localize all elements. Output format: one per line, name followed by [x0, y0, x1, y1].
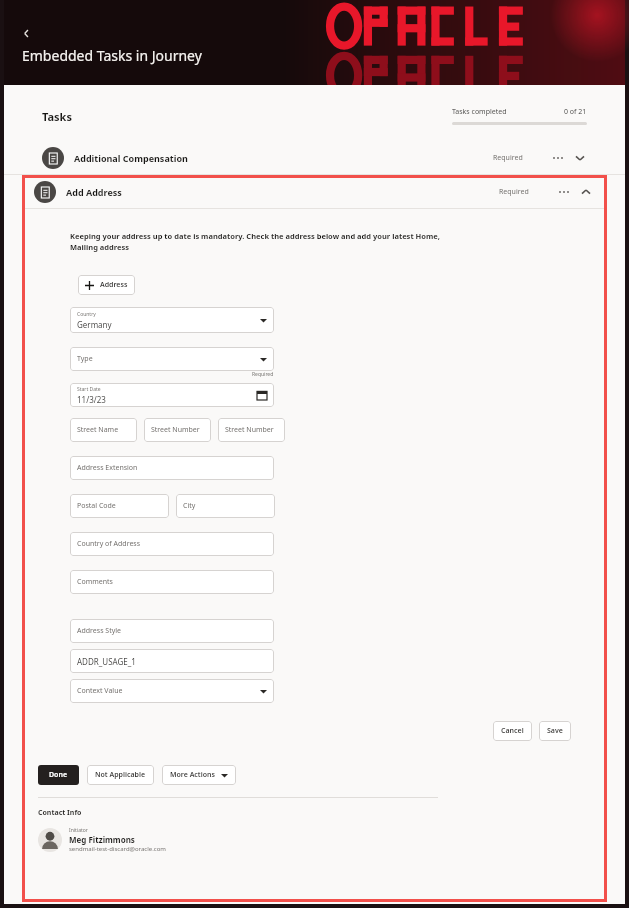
button[interactable]: Country: [70, 307, 274, 333]
staticText: Address Style: [77, 626, 122, 636]
staticText: Save: [547, 726, 563, 736]
staticText: Required: [493, 153, 523, 163]
button[interactable]: Address: [78, 275, 135, 295]
staticText: Add Address: [66, 186, 122, 198]
button[interactable]: More Actions: [162, 765, 236, 785]
staticText: Done: [49, 770, 68, 780]
staticText: sendmail-test-discard@oracle.com: [69, 845, 166, 853]
staticText: Context Value: [77, 686, 123, 696]
button[interactable]: Street Name: [70, 418, 137, 442]
staticText: Germany: [77, 319, 112, 330]
button[interactable]: More options: [551, 151, 565, 165]
staticText: Not Applicable: [95, 770, 146, 780]
button[interactable]: Address Extension: [70, 456, 274, 480]
staticText: 11/3/23: [77, 394, 106, 405]
button[interactable]: Street Number Ext: [218, 418, 285, 442]
button[interactable]: Collapse: [579, 185, 593, 199]
button[interactable]: Comments: [70, 570, 274, 594]
staticText: ADDR_USAGE_1: [77, 656, 136, 667]
button[interactable]: Back: [22, 26, 36, 40]
staticText: Meg Fitzimmons: [69, 834, 135, 845]
button[interactable]: Type: [70, 347, 274, 371]
button[interactable]: Additional Compensation: [4, 141, 625, 174]
button[interactable]: More options: [557, 185, 571, 199]
staticText: 0 of 21: [564, 107, 587, 117]
button[interactable]: Not Applicable: [87, 765, 154, 785]
staticText: Country of Address: [77, 539, 141, 549]
button[interactable]: Cancel: [493, 721, 532, 741]
button[interactable]: Postal Code: [70, 494, 169, 518]
button[interactable]: Context Value: [70, 679, 274, 703]
staticText: Street Number: [151, 425, 200, 435]
staticText: Keeping your address up to date is manda…: [70, 231, 445, 252]
button[interactable]: Country of Address: [70, 532, 274, 556]
staticText: Country: [77, 311, 96, 318]
staticText: Additional Compensation: [74, 152, 188, 164]
button[interactable]: Save: [539, 721, 571, 741]
button[interactable]: City: [176, 494, 275, 518]
staticText: Address: [100, 280, 128, 290]
staticText: Comments: [77, 577, 113, 587]
staticText: Street Number Ext: [225, 425, 278, 435]
staticText: Initiator: [69, 827, 88, 834]
staticText: Cancel: [501, 726, 524, 736]
staticText: Embedded Tasks in Journey: [22, 46, 202, 65]
staticText: Start Date: [77, 386, 101, 393]
staticText: Contact Info: [38, 808, 82, 818]
button[interactable]: Done: [38, 765, 79, 785]
staticText: Required: [252, 371, 274, 378]
button[interactable]: Address Style: [70, 619, 274, 643]
staticText: More Actions: [170, 770, 215, 780]
staticText: Tasks: [42, 109, 72, 124]
staticText: Postal Code: [77, 501, 116, 511]
button[interactable]: Start Date: [70, 383, 274, 407]
staticText: Tasks completed: [452, 107, 507, 117]
staticText: Type: [77, 354, 93, 364]
staticText: City: [183, 501, 196, 511]
button[interactable]: Add Address: [22, 175, 607, 208]
button[interactable]: Expand: [573, 151, 587, 165]
staticText: Street Name: [77, 425, 119, 435]
staticText: Address Extension: [77, 463, 138, 473]
staticText: Required: [499, 187, 529, 197]
button[interactable]: Street Number: [144, 418, 211, 442]
button[interactable]: ADDR_USAGE_1: [70, 649, 274, 673]
